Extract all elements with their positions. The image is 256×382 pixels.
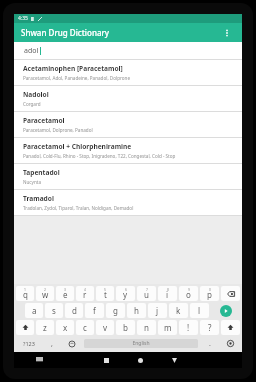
button[interactable]: 3: [56, 286, 74, 301]
button[interactable]: z: [36, 320, 54, 335]
staticText: y: [123, 289, 128, 300]
staticText: Tapentadol: [23, 168, 60, 177]
button[interactable]: d: [65, 303, 83, 318]
staticText: b: [123, 322, 128, 333]
staticText: English: [132, 340, 150, 347]
staticText: d: [72, 305, 77, 316]
button[interactable]: 7: [137, 286, 156, 301]
button[interactable]: c: [76, 320, 94, 335]
staticText: 3: [64, 287, 66, 292]
button[interactable]: 6: [116, 286, 135, 301]
button[interactable]: Acetaminophen [Paracetamol]: [14, 60, 242, 85]
button[interactable]: b: [116, 320, 135, 335]
staticText: g: [113, 305, 118, 316]
button[interactable]: Back: [89, 352, 123, 368]
staticText: Corgard: [23, 101, 41, 107]
staticText: Shwan Drug Dictionary: [21, 27, 110, 38]
button[interactable]: ?123: [16, 336, 42, 351]
button[interactable]: f: [85, 303, 104, 318]
button[interactable]: Nadolol: [14, 86, 242, 111]
staticText: 0: [209, 287, 211, 292]
staticText: Nucynta: [23, 179, 41, 185]
button[interactable]: Enter: [220, 305, 232, 317]
staticText: Nadolol: [23, 90, 49, 99]
button[interactable]: Shift: [221, 320, 240, 335]
staticText: Paracetamol: [23, 116, 65, 125]
button[interactable]: !: [179, 320, 198, 335]
button[interactable]: Tapentadol: [14, 164, 242, 189]
button[interactable]: 8: [158, 286, 177, 301]
button[interactable]: Tramadol: [14, 190, 242, 215]
button[interactable]: g: [106, 303, 125, 318]
staticText: 1: [24, 287, 26, 292]
staticText: a: [32, 305, 37, 316]
staticText: w: [42, 289, 49, 300]
button[interactable]: More options: [219, 25, 235, 41]
staticText: q: [23, 289, 28, 300]
staticText: adol: [24, 46, 39, 56]
button[interactable]: 4: [76, 286, 94, 301]
staticText: 6: [125, 287, 127, 292]
staticText: x: [63, 322, 68, 333]
staticText: h: [134, 305, 139, 316]
button[interactable]: 0: [200, 286, 219, 301]
staticText: e: [63, 289, 68, 300]
staticText: r: [83, 289, 87, 300]
staticText: j: [156, 305, 159, 316]
button[interactable]: k: [169, 303, 188, 318]
staticText: 9: [188, 287, 190, 292]
staticText: 8: [167, 287, 169, 292]
button[interactable]: l: [190, 303, 209, 318]
staticText: u: [144, 289, 149, 300]
staticText: !: [187, 322, 190, 333]
staticText: 4:35: [18, 15, 28, 22]
button[interactable]: 5: [96, 286, 114, 301]
staticText: n: [144, 322, 149, 333]
button[interactable]: m: [158, 320, 177, 335]
button[interactable]: 1: [16, 286, 34, 301]
button[interactable]: ?: [200, 320, 219, 335]
button[interactable]: s: [45, 303, 63, 318]
staticText: t: [104, 289, 107, 300]
staticText: v: [103, 322, 108, 333]
staticText: .: [209, 339, 211, 349]
staticText: i: [166, 289, 169, 300]
button[interactable]: Recent apps: [157, 352, 191, 368]
button[interactable]: j: [148, 303, 167, 318]
button[interactable]: Paracetamol: [14, 112, 242, 137]
staticText: p: [207, 289, 212, 300]
button[interactable]: Hide keyboard: [14, 352, 64, 368]
staticText: 4: [84, 287, 86, 292]
staticText: c: [83, 322, 87, 333]
staticText: 7: [146, 287, 148, 292]
button[interactable]: Backspace: [221, 286, 240, 301]
button[interactable]: Settings: [220, 336, 240, 351]
button[interactable]: 9: [179, 286, 198, 301]
button[interactable]: h: [127, 303, 146, 318]
staticText: o: [186, 289, 191, 300]
button[interactable]: English: [84, 339, 198, 348]
staticText: l: [198, 305, 201, 316]
staticText: Acetaminophen [Paracetamol]: [23, 64, 123, 73]
button[interactable]: Shift: [16, 320, 34, 335]
button[interactable]: x: [56, 320, 74, 335]
staticText: Tramadol: [23, 194, 54, 203]
button[interactable]: adol: [24, 42, 242, 59]
staticText: k: [176, 305, 181, 316]
button[interactable]: ,: [42, 336, 62, 351]
button[interactable]: Emoji: [62, 336, 82, 351]
staticText: Paracetamol, Adol, Panadeine, Panadol, D…: [23, 75, 130, 81]
button[interactable]: .: [200, 336, 220, 351]
button[interactable]: Paracetamol + Chlorpheniramine: [14, 138, 242, 163]
staticText: ?: [208, 322, 212, 333]
button[interactable]: 2: [36, 286, 54, 301]
staticText: ,: [51, 339, 53, 349]
button[interactable]: a: [25, 303, 43, 318]
button[interactable]: Home: [123, 352, 157, 368]
button[interactable]: v: [96, 320, 114, 335]
staticText: Paracetamol + Chlorpheniramine: [23, 142, 132, 151]
staticText: m: [164, 322, 172, 333]
staticText: Panadol, Cold-Flu, Rhino - Stop, Inigrad…: [23, 153, 176, 159]
staticText: z: [43, 322, 47, 333]
button[interactable]: n: [137, 320, 156, 335]
